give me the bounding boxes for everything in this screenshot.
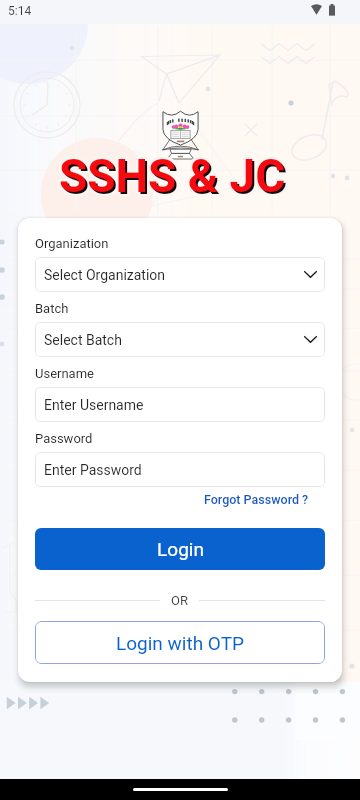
staticText: SSHS & JC (59, 147, 286, 201)
other: Battery (329, 4, 335, 16)
other: Wi-Fi (311, 4, 322, 16)
staticText: SSHS & JC (61, 147, 288, 201)
button[interactable]: Forgot Password ? (204, 492, 309, 507)
button[interactable]: Select Batch (35, 322, 325, 357)
staticText: Forgot Password ? (204, 492, 309, 507)
button[interactable]: Login with OTP (35, 621, 325, 664)
other: Open dropdown (304, 336, 317, 343)
staticText: OR (171, 593, 188, 608)
staticText: SSHS & JC (63, 153, 290, 207)
staticText: Enter Username (44, 397, 144, 413)
staticText: Password (35, 431, 93, 446)
staticText: Batch (35, 301, 69, 316)
staticText: Organization (35, 236, 109, 251)
staticText: SSHS & JC (57, 149, 284, 203)
staticText: SSHS & JC (62, 149, 289, 203)
button[interactable]: Select Organization (35, 257, 325, 292)
staticText: SSHS & JC (57, 147, 284, 201)
staticText: SSHS & JC (59, 152, 286, 206)
staticText: SSHS & JC (57, 151, 284, 205)
staticText: SSHS & JC (61, 149, 288, 203)
other: Open dropdown (304, 271, 317, 278)
staticText: SSHS & JC (61, 151, 288, 205)
button[interactable]: Enter Password (35, 452, 325, 487)
staticText: 5:14 (8, 4, 32, 18)
staticText: Select Batch (44, 332, 122, 348)
staticText: Login (157, 538, 204, 560)
staticText: SSHS & JC (59, 151, 286, 205)
button[interactable]: Enter Username (35, 387, 325, 422)
staticText: Login with OTP (116, 632, 244, 654)
staticText: Username (35, 366, 94, 381)
staticText: Select Organization (44, 267, 166, 283)
button[interactable]: Login (35, 528, 325, 570)
staticText: SSHS & JC (59, 149, 286, 203)
staticText: Enter Password (44, 462, 142, 478)
staticText: SSHS & JC (61, 151, 288, 205)
